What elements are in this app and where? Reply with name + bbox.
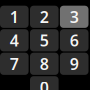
button[interactable]: 0: [30, 76, 59, 90]
staticText: 3: [70, 6, 79, 27]
button[interactable]: 1: [0, 6, 29, 28]
staticText: 4: [10, 30, 19, 51]
staticText: 1: [10, 6, 19, 27]
staticText: 2: [40, 6, 49, 27]
button[interactable]: 4: [0, 29, 29, 51]
button[interactable]: 8: [30, 53, 59, 75]
button[interactable]: 5: [30, 29, 59, 51]
button[interactable]: 2: [30, 6, 59, 28]
button[interactable]: 7: [0, 53, 29, 75]
staticText: 0: [40, 77, 49, 90]
staticText: 8: [40, 53, 49, 74]
staticText: 6: [70, 30, 79, 51]
button[interactable]: 3: [60, 6, 88, 28]
staticText: 9: [70, 53, 79, 74]
staticText: 5: [40, 30, 49, 51]
staticText: 7: [10, 53, 19, 74]
button[interactable]: 6: [60, 29, 88, 51]
button[interactable]: 9: [60, 53, 88, 75]
